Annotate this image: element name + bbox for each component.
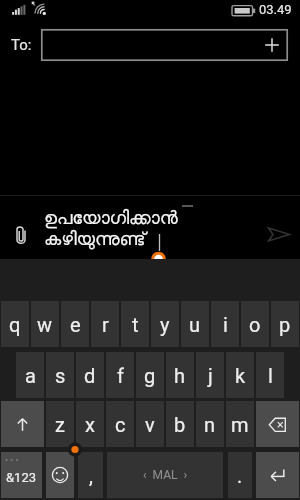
staticText: h xyxy=(174,364,186,387)
button[interactable]: Backspace xyxy=(256,401,299,447)
staticText: t xyxy=(132,313,139,336)
staticText: 03.49 xyxy=(259,2,292,17)
staticText: d xyxy=(84,364,96,387)
button[interactable]: t xyxy=(121,301,149,347)
staticText: &123 xyxy=(6,470,37,485)
staticText: l xyxy=(268,364,273,387)
button[interactable]: f xyxy=(106,352,134,398)
button[interactable]: r xyxy=(91,301,119,347)
staticText: v xyxy=(145,413,155,436)
button[interactable]: . xyxy=(228,452,252,498)
staticText: n xyxy=(204,413,216,436)
staticText: z xyxy=(55,413,65,436)
button[interactable]: l xyxy=(256,352,284,398)
button[interactable]: n xyxy=(196,401,224,447)
staticText: s xyxy=(55,364,66,387)
staticText: b xyxy=(174,413,186,436)
staticText: w xyxy=(37,313,53,336)
staticText: ഉപയോഗിക്കാൻ കഴിയുന്നുണ്ട് xyxy=(44,210,178,249)
button[interactable]: i xyxy=(211,301,239,347)
button[interactable]: j xyxy=(196,352,224,398)
button[interactable]: c xyxy=(106,401,134,447)
button[interactable]: Send xyxy=(266,224,292,250)
button[interactable]: y xyxy=(151,301,179,347)
button[interactable]: , xyxy=(78,452,103,498)
button[interactable]: g xyxy=(136,352,164,398)
staticText: i xyxy=(223,313,228,336)
button[interactable]: Emoji xyxy=(46,452,74,498)
button[interactable]: w xyxy=(31,301,59,347)
button[interactable]: Shift xyxy=(1,401,44,447)
staticText: ‹ MAL › xyxy=(143,468,187,482)
button[interactable]: &123 xyxy=(1,452,42,498)
staticText: r xyxy=(102,313,109,336)
button[interactable]: Attach xyxy=(11,225,31,245)
staticText: g xyxy=(144,364,156,387)
staticText: p xyxy=(279,313,291,336)
staticText: u xyxy=(189,313,201,336)
staticText: To: xyxy=(11,36,32,54)
button[interactable]: e xyxy=(61,301,89,347)
staticText: c xyxy=(115,413,126,436)
button[interactable]: p xyxy=(271,301,299,347)
button[interactable]: u xyxy=(181,301,209,347)
staticText: k xyxy=(235,364,246,387)
staticText: a xyxy=(25,364,36,387)
button[interactable]: b xyxy=(166,401,194,447)
staticText: e xyxy=(70,313,81,336)
staticText: y xyxy=(160,313,170,336)
staticText: . xyxy=(237,464,243,487)
staticText: , xyxy=(89,464,93,487)
button[interactable]: h xyxy=(166,352,194,398)
staticText: x xyxy=(85,413,95,436)
staticText: q xyxy=(9,313,21,336)
button[interactable]: m xyxy=(226,401,254,447)
button[interactable]: x xyxy=(76,401,104,447)
button[interactable]: v xyxy=(136,401,164,447)
button[interactable]: d xyxy=(76,352,104,398)
button[interactable]: a xyxy=(16,352,44,398)
button[interactable]: Recipient field xyxy=(41,29,288,61)
button[interactable]: z xyxy=(46,401,74,447)
button[interactable]: Enter xyxy=(256,452,299,498)
staticText: j xyxy=(208,364,213,387)
staticText: m xyxy=(231,413,249,436)
button[interactable]: k xyxy=(226,352,254,398)
staticText: f xyxy=(117,364,124,387)
button[interactable]: o xyxy=(241,301,269,347)
staticText: o xyxy=(249,313,261,336)
button[interactable]: s xyxy=(46,352,74,398)
button[interactable]: q xyxy=(1,301,29,347)
button[interactable]: ‹ MAL › xyxy=(107,452,223,498)
